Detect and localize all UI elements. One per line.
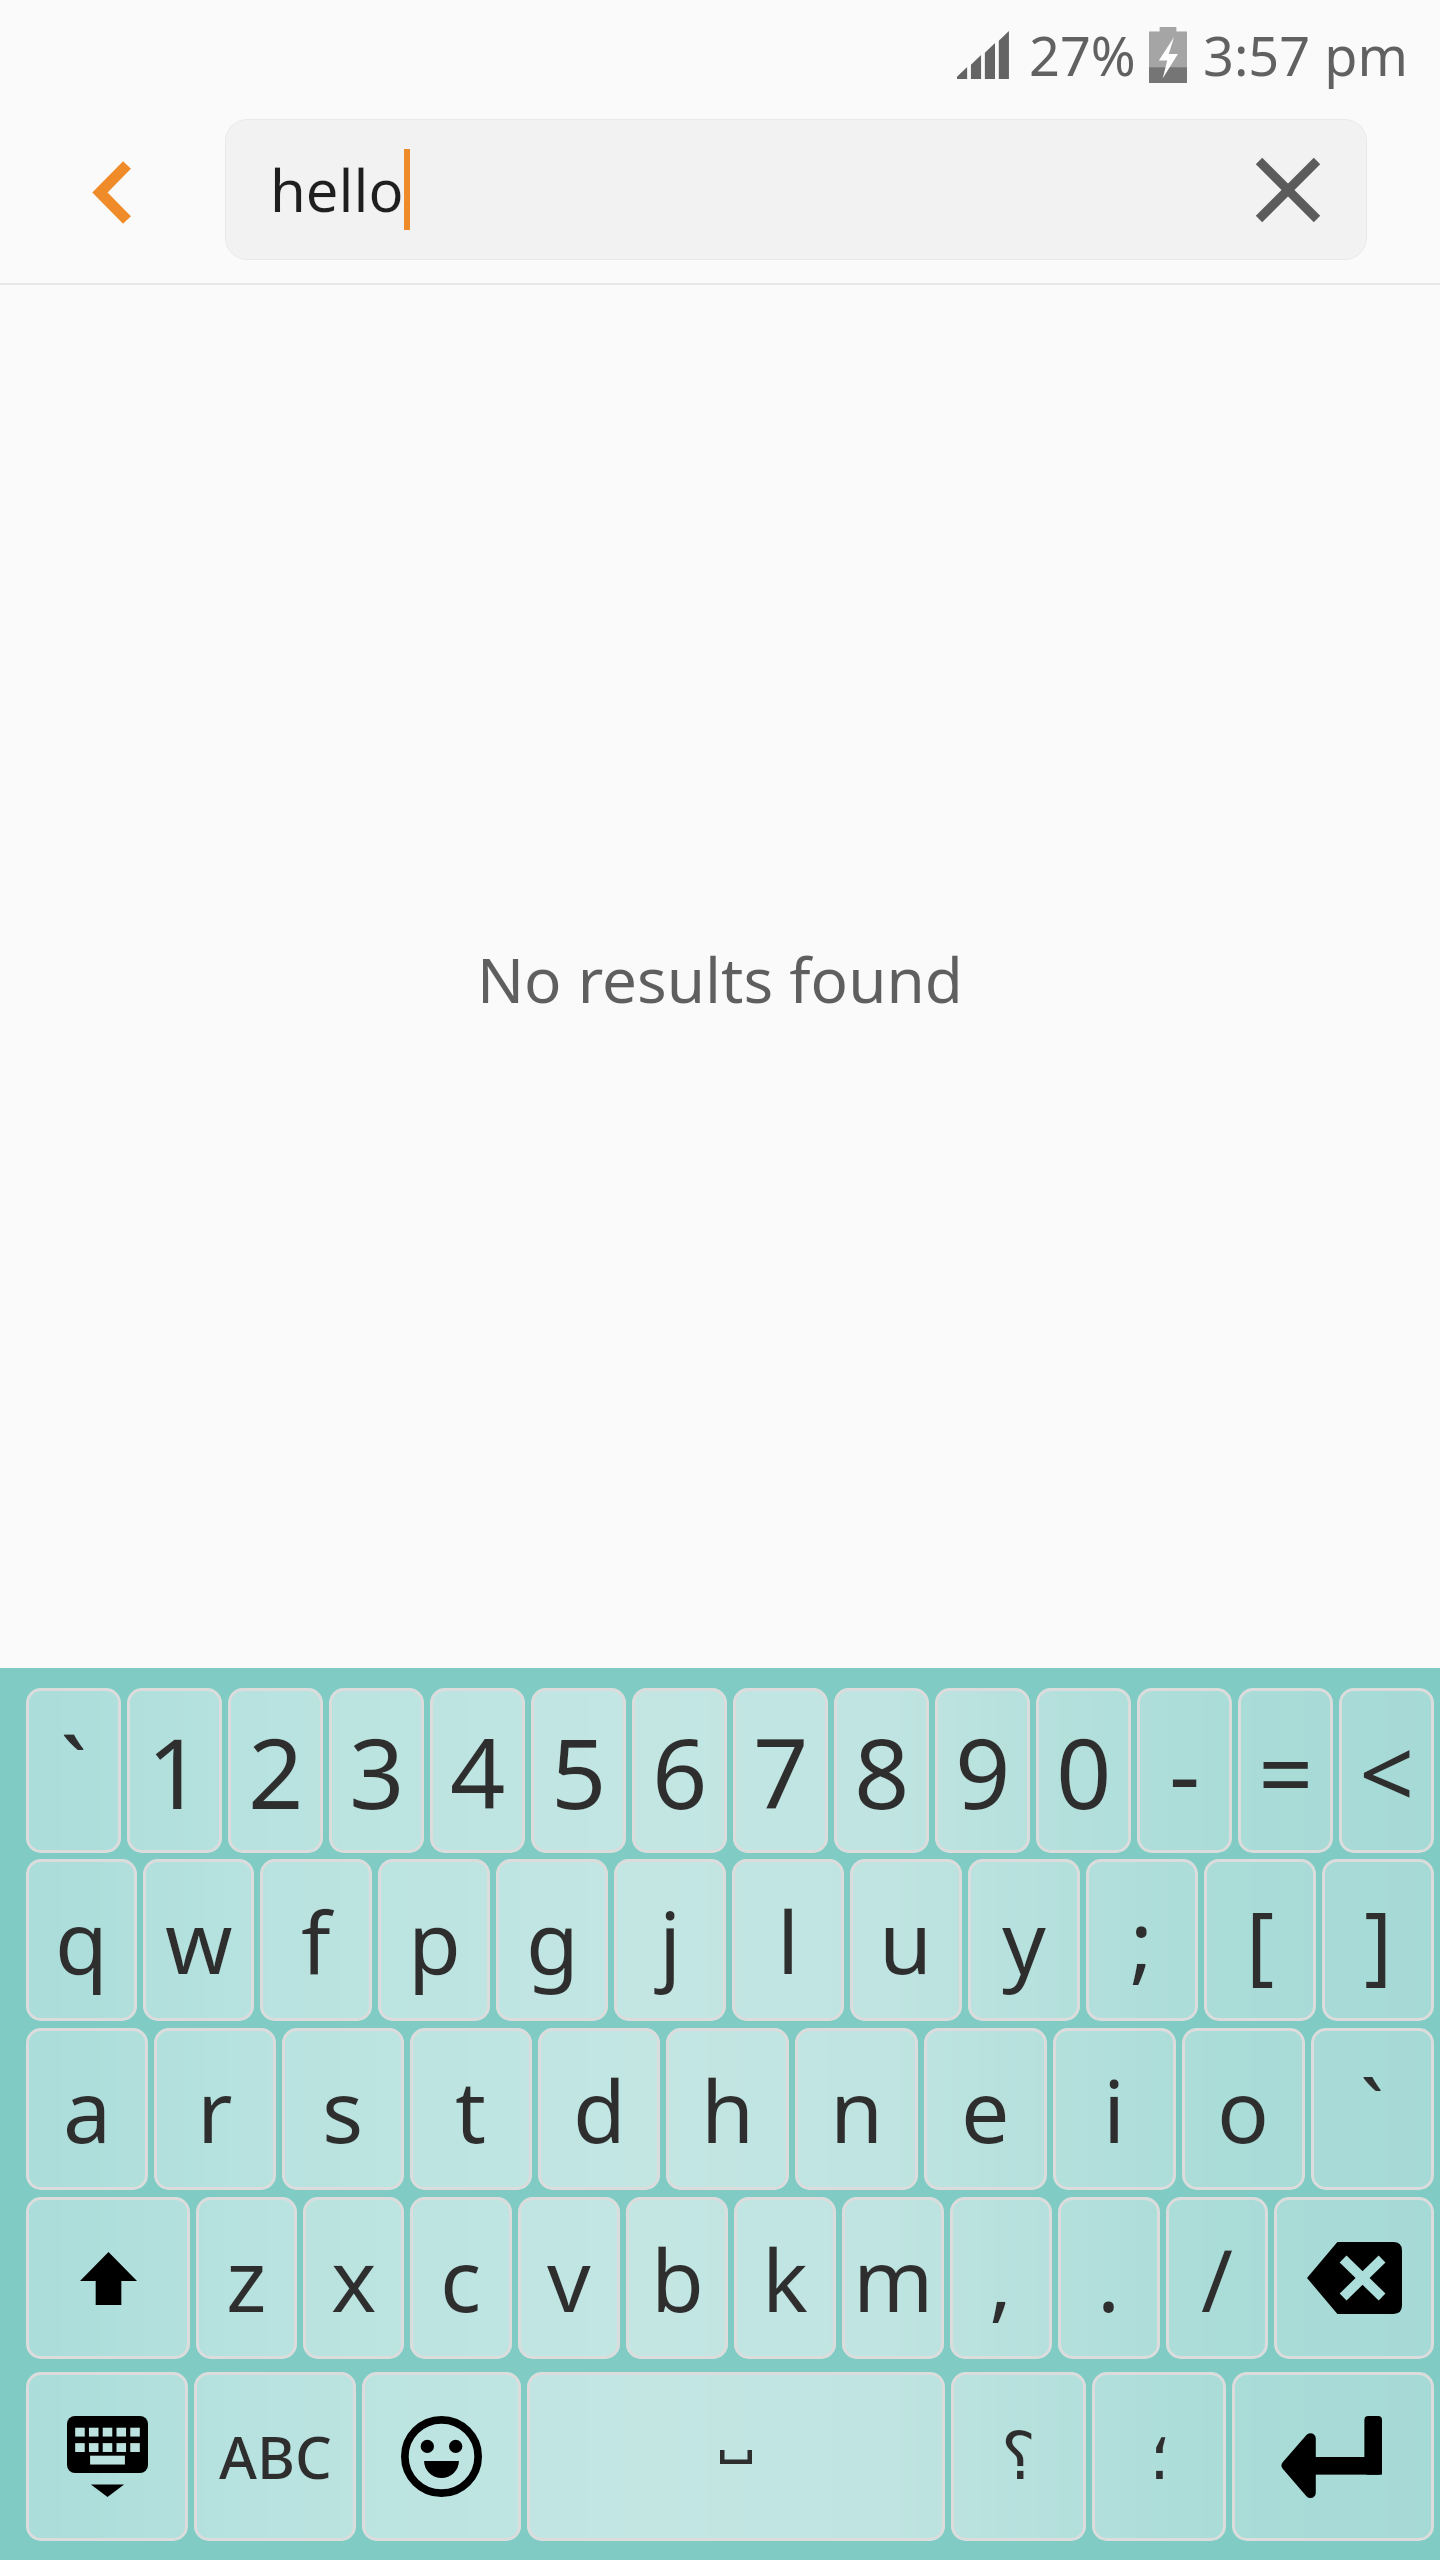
button[interactable]: n <box>795 2028 918 2190</box>
button[interactable]: Clear search <box>1224 126 1352 254</box>
button[interactable] <box>1274 2197 1434 2359</box>
staticText: 9 <box>955 1705 1011 1837</box>
staticText: [ <box>1246 1882 1275 1999</box>
staticText: z <box>226 2220 267 2337</box>
staticText: a <box>63 2051 112 2168</box>
staticText: ; <box>1130 1882 1154 1999</box>
button[interactable]: h <box>666 2028 789 2190</box>
button[interactable]: - <box>1137 1688 1232 1853</box>
button[interactable]: 2 <box>228 1688 323 1853</box>
button[interactable]: 9 <box>935 1688 1030 1853</box>
staticText: y <box>1002 1882 1046 1999</box>
button[interactable]: , <box>950 2197 1052 2359</box>
button[interactable]: ؟ <box>951 2372 1086 2541</box>
staticText: ABC <box>219 2417 332 2496</box>
staticText: - <box>1169 1705 1201 1837</box>
button[interactable]: Back <box>0 110 225 274</box>
button[interactable]: ] <box>1322 1859 1434 2021</box>
button[interactable]: z <box>196 2197 297 2359</box>
staticText: / <box>1201 2220 1233 2337</box>
staticText: r <box>197 2051 233 2168</box>
button[interactable]: i <box>1053 2028 1176 2190</box>
staticText: q <box>55 1882 108 1999</box>
button[interactable]: / <box>1166 2197 1268 2359</box>
button[interactable]: y <box>968 1859 1080 2021</box>
button[interactable]: ؛ <box>1092 2372 1226 2541</box>
staticText: w <box>165 1882 233 1999</box>
staticText: 1 <box>147 1705 203 1837</box>
button[interactable] <box>26 2372 188 2541</box>
button[interactable] <box>527 2372 945 2541</box>
button[interactable]: = <box>1238 1688 1333 1853</box>
button[interactable]: 4 <box>430 1688 525 1853</box>
button[interactable]: g <box>496 1859 608 2021</box>
staticText: p <box>408 1882 461 1999</box>
staticText: e <box>961 2051 1010 2168</box>
staticText: 27% <box>1029 18 1136 92</box>
staticText: t <box>455 2051 487 2168</box>
staticText: hello <box>270 150 404 229</box>
button[interactable]: w <box>143 1859 254 2021</box>
staticText: m <box>853 2220 934 2337</box>
staticText: 7 <box>753 1705 809 1837</box>
button[interactable] <box>26 2197 190 2359</box>
button[interactable]: . <box>1058 2197 1160 2359</box>
button[interactable]: 0 <box>1036 1688 1131 1853</box>
staticText: s <box>322 2051 364 2168</box>
staticText: 6 <box>652 1705 708 1837</box>
button[interactable]: u <box>850 1859 962 2021</box>
button[interactable]: l <box>732 1859 844 2021</box>
staticText: g <box>526 1882 579 1999</box>
button[interactable] <box>362 2372 521 2541</box>
staticText: ؟ <box>1001 2418 1037 2495</box>
button[interactable]: s <box>282 2028 404 2190</box>
staticText: j <box>659 1882 682 1999</box>
staticText: i <box>1103 2051 1126 2168</box>
button[interactable]: ` <box>1311 2028 1434 2190</box>
staticText: n <box>830 2051 884 2168</box>
staticText: u <box>879 1882 933 1999</box>
button[interactable] <box>1232 2372 1434 2541</box>
button[interactable]: k <box>734 2197 836 2359</box>
button[interactable]: m <box>842 2197 944 2359</box>
staticText: . <box>1097 2220 1121 2337</box>
button[interactable]: 6 <box>632 1688 727 1853</box>
staticText: 4 <box>450 1705 506 1837</box>
button[interactable]: 7 <box>733 1688 828 1853</box>
staticText: 5 <box>551 1705 607 1837</box>
button[interactable]: r <box>154 2028 276 2190</box>
staticText: k <box>762 2220 808 2337</box>
button[interactable]: c <box>410 2197 512 2359</box>
staticText: = <box>1258 1705 1314 1837</box>
button[interactable]: t <box>410 2028 532 2190</box>
button[interactable]: p <box>378 1859 490 2021</box>
button[interactable]: 8 <box>834 1688 929 1853</box>
button[interactable]: j <box>614 1859 726 2021</box>
button[interactable]: b <box>626 2197 728 2359</box>
button[interactable]: x <box>303 2197 404 2359</box>
staticText: No results found <box>477 937 963 1021</box>
button[interactable]: 5 <box>531 1688 626 1853</box>
button[interactable]: a <box>26 2028 148 2190</box>
staticText: d <box>573 2051 626 2168</box>
staticText: ` <box>60 1705 88 1837</box>
button[interactable]: e <box>924 2028 1047 2190</box>
staticText: f <box>301 1882 331 1999</box>
button[interactable]: hello <box>225 119 1367 260</box>
staticText: 3 <box>349 1705 405 1837</box>
button[interactable]: q <box>26 1859 137 2021</box>
staticText: l <box>777 1882 800 1999</box>
button[interactable]: f <box>260 1859 372 2021</box>
button[interactable]: ; <box>1086 1859 1198 2021</box>
button[interactable]: d <box>538 2028 660 2190</box>
staticText: o <box>1217 2051 1270 2168</box>
button[interactable]: ABC <box>194 2372 356 2541</box>
staticText: 8 <box>854 1705 910 1837</box>
button[interactable]: < <box>1339 1688 1434 1853</box>
button[interactable]: 1 <box>127 1688 222 1853</box>
button[interactable]: o <box>1182 2028 1305 2190</box>
button[interactable]: v <box>518 2197 620 2359</box>
button[interactable]: 3 <box>329 1688 424 1853</box>
button[interactable]: ` <box>26 1688 121 1853</box>
button[interactable]: [ <box>1204 1859 1316 2021</box>
